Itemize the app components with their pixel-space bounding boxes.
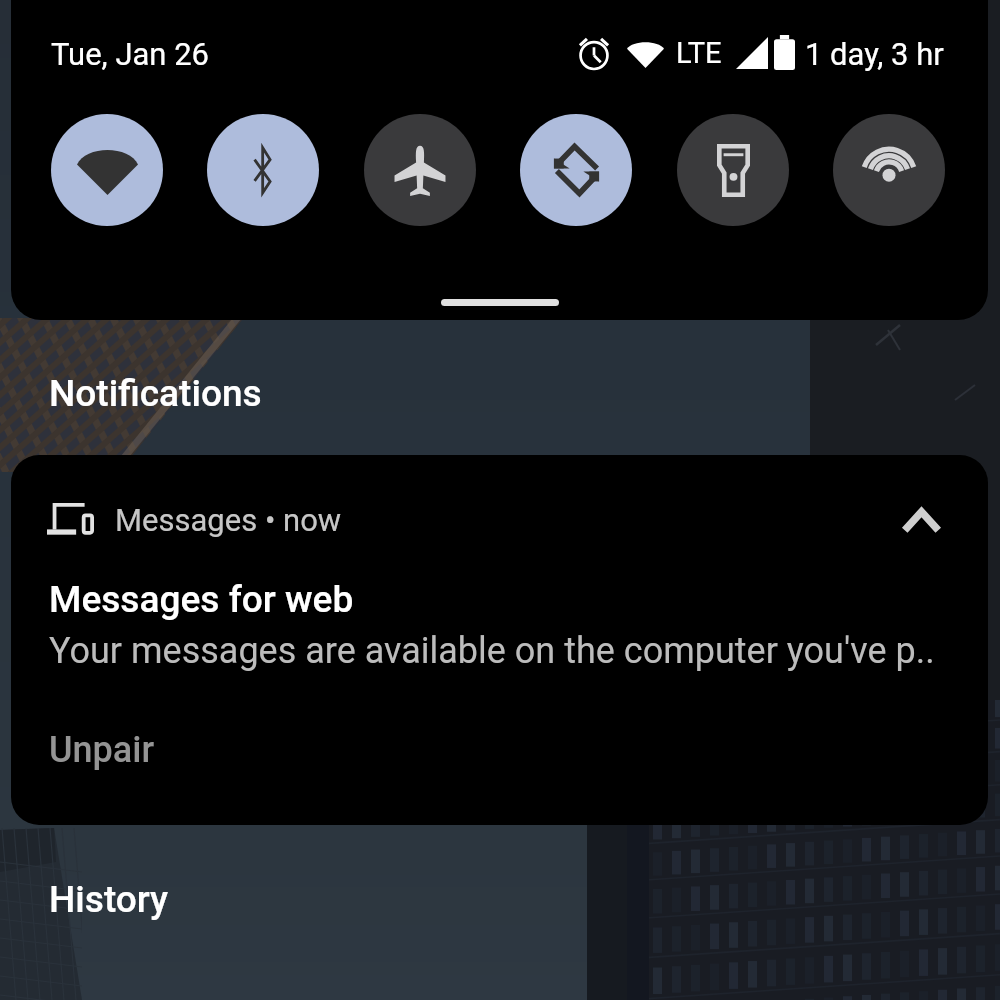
staticText: Tue, Jan 26 bbox=[51, 36, 209, 72]
staticText: Messages • now bbox=[115, 502, 342, 538]
staticText: LTE bbox=[676, 36, 722, 70]
button[interactable]: Auto-rotate bbox=[520, 114, 632, 226]
button[interactable]: Flashlight bbox=[677, 114, 789, 226]
button[interactable]: Cast bbox=[833, 114, 945, 226]
button[interactable]: Unpair bbox=[38, 721, 166, 779]
staticText: Notifications bbox=[49, 372, 262, 415]
button[interactable]: Collapse notification bbox=[892, 492, 950, 550]
staticText: 1 day, 3 hr bbox=[805, 36, 944, 72]
staticText: Unpair bbox=[49, 729, 155, 771]
button[interactable]: Bluetooth bbox=[207, 114, 319, 226]
staticText: Your messages are available on the compu… bbox=[49, 630, 935, 672]
staticText: History bbox=[49, 878, 169, 921]
staticText: Messages for web bbox=[49, 578, 354, 621]
button[interactable]: Messages • now bbox=[11, 455, 988, 825]
button[interactable]: Wi-Fi bbox=[51, 114, 163, 226]
button[interactable]: Airplane mode bbox=[364, 114, 476, 226]
